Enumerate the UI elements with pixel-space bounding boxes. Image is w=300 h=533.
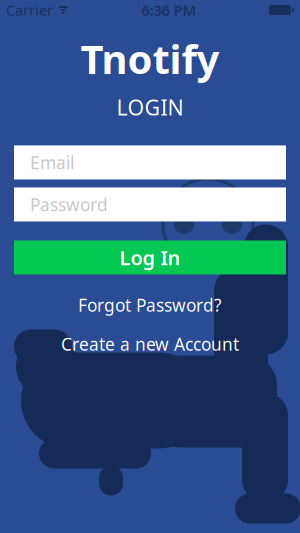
staticText: Password (30, 193, 108, 216)
staticText: Forgot Password? (78, 293, 222, 316)
staticText: Email (30, 151, 74, 174)
button[interactable]: Log In (14, 240, 286, 274)
button[interactable]: Email (14, 145, 286, 179)
staticText: Create a new Account (61, 332, 239, 355)
staticText: Tnotify (80, 32, 219, 85)
button[interactable]: Forgot Password? (68, 290, 232, 319)
staticText: 6:36 PM (141, 0, 196, 20)
button[interactable]: Password (14, 187, 286, 221)
staticText: Carrier (6, 0, 53, 20)
staticText: Log In (119, 244, 180, 271)
staticText: LOGIN (116, 93, 183, 121)
button[interactable]: Create a new Account (51, 329, 249, 358)
